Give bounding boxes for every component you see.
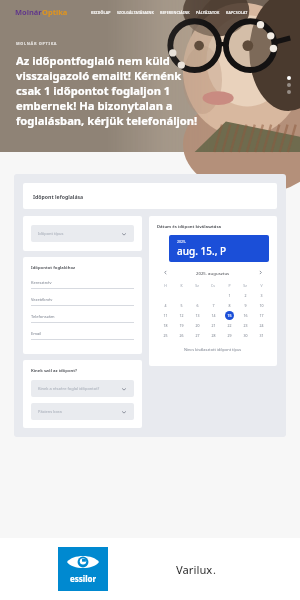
button[interactable]: 28 [209, 331, 218, 340]
staticText: Időpontot foglalóhoz [31, 265, 76, 271]
staticText: Optika [42, 7, 68, 17]
staticText: Nincs kiválasztott időpont típus [184, 347, 242, 352]
staticText: Telefonszám [31, 314, 55, 319]
button[interactable]: 15 [225, 311, 234, 320]
staticText: 4 [164, 303, 167, 308]
staticText: 5 [180, 303, 183, 308]
staticText: MOLNÁR OPTIKA [16, 41, 58, 46]
staticText: 6 [196, 303, 199, 308]
button[interactable]: 17 [257, 311, 266, 320]
staticText: Sz [195, 283, 199, 288]
button[interactable]: 8 [225, 301, 234, 310]
button[interactable]: 20 [193, 321, 202, 330]
button[interactable]: 4 [161, 301, 170, 310]
staticText: 9 [244, 303, 247, 308]
button[interactable]: PÁLYÁZATOK [193, 6, 223, 19]
button[interactable]: Telefonszám [31, 312, 134, 329]
button[interactable]: 23 [241, 321, 250, 330]
button[interactable]: Páciens kora [31, 403, 134, 420]
button[interactable]: Slide 1 [287, 76, 291, 80]
button[interactable]: 18 [161, 321, 170, 330]
button[interactable]: 26 [177, 331, 186, 340]
button[interactable]: 10 [257, 301, 266, 310]
button[interactable]: Kinek a részére foglal időpontot? [31, 380, 134, 397]
button[interactable]: Varilux [170, 556, 222, 583]
button[interactable]: Slide 3 [287, 90, 291, 94]
staticText: KAPCSOLAT [226, 10, 248, 15]
staticText: Varilux [176, 562, 213, 577]
staticText: 16 [243, 313, 248, 318]
button[interactable]: Molnár [13, 5, 70, 19]
button[interactable]: 9 [241, 301, 250, 310]
button[interactable]: Vezetéknév [31, 295, 134, 312]
staticText: Kinek a részére foglal időpontot? [38, 386, 100, 391]
staticText: 31 [259, 333, 264, 338]
button[interactable]: Slide 2 [287, 83, 291, 87]
staticText: 18 [163, 323, 168, 328]
button[interactable]: 1 [225, 291, 234, 300]
staticText: Az időpontfoglaló nem küld visszaigazoló… [16, 53, 198, 128]
button[interactable]: 24 [257, 321, 266, 330]
button[interactable]: 21 [209, 321, 218, 330]
button[interactable]: 30 [241, 331, 250, 340]
staticText: Cs [211, 283, 215, 288]
staticText: aug. 15., P [177, 244, 227, 258]
staticText: 19 [179, 323, 184, 328]
staticText: 23 [243, 323, 248, 328]
staticText: 11 [163, 313, 168, 318]
button[interactable]: Időpont típus [31, 225, 134, 242]
button[interactable]: Email [31, 329, 134, 346]
staticText: 2025. [177, 239, 187, 244]
staticText: Email [31, 331, 42, 336]
staticText: 22 [227, 323, 232, 328]
button[interactable]: 31 [257, 331, 266, 340]
button[interactable]: Keresztnév [31, 278, 134, 295]
staticText: Molnár [15, 7, 42, 17]
staticText: Páciens kora [38, 409, 62, 414]
button[interactable]: 2 [241, 291, 250, 300]
staticText: 10 [259, 303, 264, 308]
button[interactable]: 3 [257, 291, 266, 300]
button[interactable]: REFERENCIÁINK [157, 6, 193, 19]
staticText: PÁLYÁZATOK [196, 10, 220, 15]
staticText: K [180, 283, 183, 288]
staticText: 20 [195, 323, 200, 328]
button[interactable]: 13 [193, 311, 202, 320]
staticText: P [228, 283, 231, 288]
staticText: 27 [195, 333, 200, 338]
staticText: Időpont típus [38, 231, 64, 236]
staticText: . [213, 562, 216, 577]
staticText: 17 [259, 313, 264, 318]
button[interactable]: 29 [225, 331, 234, 340]
button[interactable]: Előző hónap [161, 268, 170, 277]
staticText: 28 [211, 333, 216, 338]
staticText: 1 [228, 293, 231, 298]
button[interactable]: 6 [193, 301, 202, 310]
button[interactable]: 14 [209, 311, 218, 320]
button[interactable]: KAPCSOLAT [223, 6, 251, 19]
button[interactable]: 19 [177, 321, 186, 330]
button[interactable]: 11 [161, 311, 170, 320]
button[interactable]: Essilor [58, 547, 108, 591]
button[interactable]: Következő hónap [256, 268, 265, 277]
button[interactable]: 25 [161, 331, 170, 340]
button[interactable]: 16 [241, 311, 250, 320]
button[interactable]: SZOLGÁLTATÁSAINK [114, 6, 157, 19]
staticText: SZOLGÁLTATÁSAINK [117, 10, 154, 15]
staticText: 2 [244, 293, 247, 298]
button[interactable]: 7 [209, 301, 218, 310]
staticText: Sz [243, 283, 247, 288]
button[interactable]: KEZDŐLAP [88, 6, 114, 19]
staticText: REFERENCIÁINK [160, 10, 190, 15]
button[interactable]: 5 [177, 301, 186, 310]
staticText: 8 [228, 303, 231, 308]
button[interactable]: 22 [225, 321, 234, 330]
staticText: Keresztnév [31, 280, 52, 285]
staticText: Időpont lefoglalása [33, 193, 84, 200]
button[interactable]: 27 [193, 331, 202, 340]
staticText: V [260, 283, 263, 288]
staticText: Kinek szól az időpont? [31, 368, 78, 374]
button[interactable]: 12 [177, 311, 186, 320]
staticText: 24 [259, 323, 264, 328]
staticText: 3 [260, 293, 263, 298]
